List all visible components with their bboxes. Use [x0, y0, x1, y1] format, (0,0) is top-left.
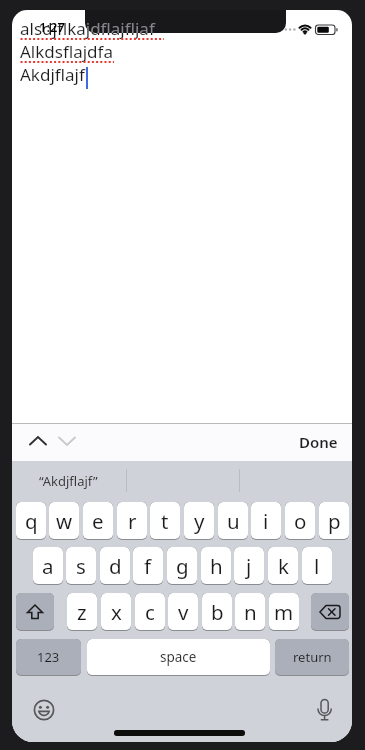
button[interactable]: d	[100, 547, 130, 585]
staticText: space	[160, 648, 197, 666]
staticText: k	[278, 552, 289, 580]
staticText: 1:27	[39, 18, 65, 36]
staticText: Done	[299, 432, 338, 452]
staticText: v	[178, 598, 189, 626]
staticText: “Akdjflajf”	[39, 472, 98, 490]
button[interactable]: x	[101, 593, 131, 631]
button[interactable]: g	[167, 547, 197, 585]
button[interactable]: q	[16, 502, 46, 540]
button[interactable]	[32, 698, 56, 722]
staticText: t	[161, 507, 169, 535]
staticText: l	[314, 552, 320, 580]
staticText: 123	[37, 648, 60, 666]
staticText: w	[56, 507, 73, 535]
button[interactable]: n	[235, 593, 265, 631]
button[interactable]: space	[87, 639, 270, 676]
button[interactable]: c	[135, 593, 165, 631]
button[interactable]: i	[251, 502, 281, 540]
button[interactable]: Done	[293, 428, 343, 455]
button[interactable]: s	[66, 547, 96, 585]
button[interactable]: j	[234, 547, 264, 585]
staticText: i	[263, 507, 269, 535]
button[interactable]: b	[202, 593, 232, 631]
button[interactable]	[27, 430, 49, 452]
staticText: y	[194, 507, 205, 535]
staticText: a	[42, 552, 54, 580]
staticText: x	[111, 598, 122, 626]
button[interactable]	[312, 698, 338, 724]
button[interactable]: t	[150, 502, 180, 540]
staticText: f	[144, 552, 152, 580]
staticText: return	[293, 648, 332, 666]
staticText: b	[211, 598, 224, 626]
button[interactable]: 123	[16, 639, 81, 676]
button[interactable]: r	[117, 502, 147, 540]
staticText: g	[176, 552, 189, 580]
button[interactable]: a	[33, 547, 63, 585]
button[interactable]: z	[67, 593, 97, 631]
staticText: alsdjflkajdflajfljaf	[20, 17, 155, 40]
staticText: h	[210, 552, 223, 580]
staticText: e	[92, 507, 104, 535]
staticText: alsdjflkajdflajfljaf	[85, 17, 155, 33]
button[interactable]	[16, 593, 54, 631]
staticText: c	[145, 598, 155, 626]
staticText: o	[294, 507, 307, 535]
staticText: j	[246, 552, 252, 580]
button[interactable]: h	[201, 547, 231, 585]
staticText: z	[77, 598, 87, 626]
button[interactable]: w	[49, 502, 79, 540]
staticText: Akdjflajf	[20, 63, 85, 86]
staticText: Alkdsflajdfa	[20, 40, 113, 63]
button[interactable]	[311, 593, 349, 631]
staticText: d	[109, 552, 122, 580]
button[interactable]	[56, 430, 78, 452]
staticText: r	[128, 507, 137, 535]
button[interactable]: f	[133, 547, 163, 585]
staticText: q	[25, 507, 38, 535]
staticText: n	[244, 598, 257, 626]
button[interactable]: p	[319, 502, 349, 540]
button[interactable]: return	[275, 639, 349, 676]
button[interactable]: v	[168, 593, 198, 631]
staticText: p	[328, 507, 341, 535]
staticText: s	[76, 552, 86, 580]
button[interactable]: “Akdjflajf”	[12, 460, 125, 502]
button[interactable]: y	[184, 502, 214, 540]
staticText: m	[274, 598, 294, 626]
button[interactable]: e	[83, 502, 113, 540]
button[interactable]: k	[268, 547, 298, 585]
button[interactable]: l	[302, 547, 332, 585]
button[interactable]: o	[285, 502, 315, 540]
button[interactable]: u	[218, 502, 248, 540]
staticText: u	[227, 507, 240, 535]
button[interactable]: m	[269, 593, 299, 631]
